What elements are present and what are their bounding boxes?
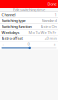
staticText: Edit switching time [13, 7, 45, 12]
staticText: 0 [27, 41, 29, 46]
staticText: - [2, 41, 3, 46]
staticText: Channel [1, 12, 15, 17]
staticText: + [53, 41, 55, 46]
button[interactable]: Weekdays [0, 30, 58, 35]
button[interactable]: Switching function [0, 24, 58, 29]
staticText: +0 min [44, 36, 56, 41]
staticText: Astro On [40, 24, 56, 29]
button[interactable]: Switching type [0, 18, 58, 23]
staticText: Switching function [1, 24, 31, 29]
staticText: Weekdays [1, 30, 19, 35]
staticText: Astro offset [1, 36, 22, 41]
staticText: Mo Tu We Th Fr [28, 30, 56, 35]
staticText: 1 [54, 12, 56, 17]
button[interactable]: Done [45, 1, 58, 7]
staticText: Switching type [1, 18, 25, 23]
button[interactable]: Channel [0, 12, 58, 17]
button[interactable]: Astro offset [0, 35, 58, 41]
staticText: Standard [41, 18, 56, 23]
staticText: Done [47, 1, 56, 7]
